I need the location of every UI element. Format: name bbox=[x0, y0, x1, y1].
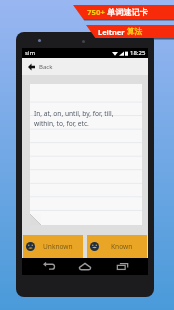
staticText: 18:25 bbox=[130, 49, 146, 57]
button[interactable]: Back bbox=[39, 258, 59, 275]
staticText: 单词速记卡 bbox=[107, 7, 148, 17]
staticText: Leitner bbox=[98, 27, 127, 37]
staticText: 750+ bbox=[87, 7, 107, 18]
staticText: 算法 bbox=[127, 27, 143, 37]
staticText: sim bbox=[25, 49, 36, 57]
button[interactable]: Home bbox=[75, 258, 95, 275]
button[interactable]: Known bbox=[87, 235, 147, 258]
staticText: Unknown bbox=[43, 242, 73, 251]
staticText: In, at, on, until, by, for, till, within… bbox=[34, 109, 114, 128]
staticText: Known bbox=[111, 242, 133, 251]
staticText: Back bbox=[39, 63, 53, 71]
button[interactable]: Back bbox=[22, 58, 148, 75]
button[interactable]: Unknown bbox=[23, 235, 83, 258]
button[interactable]: Recent apps bbox=[112, 258, 132, 275]
